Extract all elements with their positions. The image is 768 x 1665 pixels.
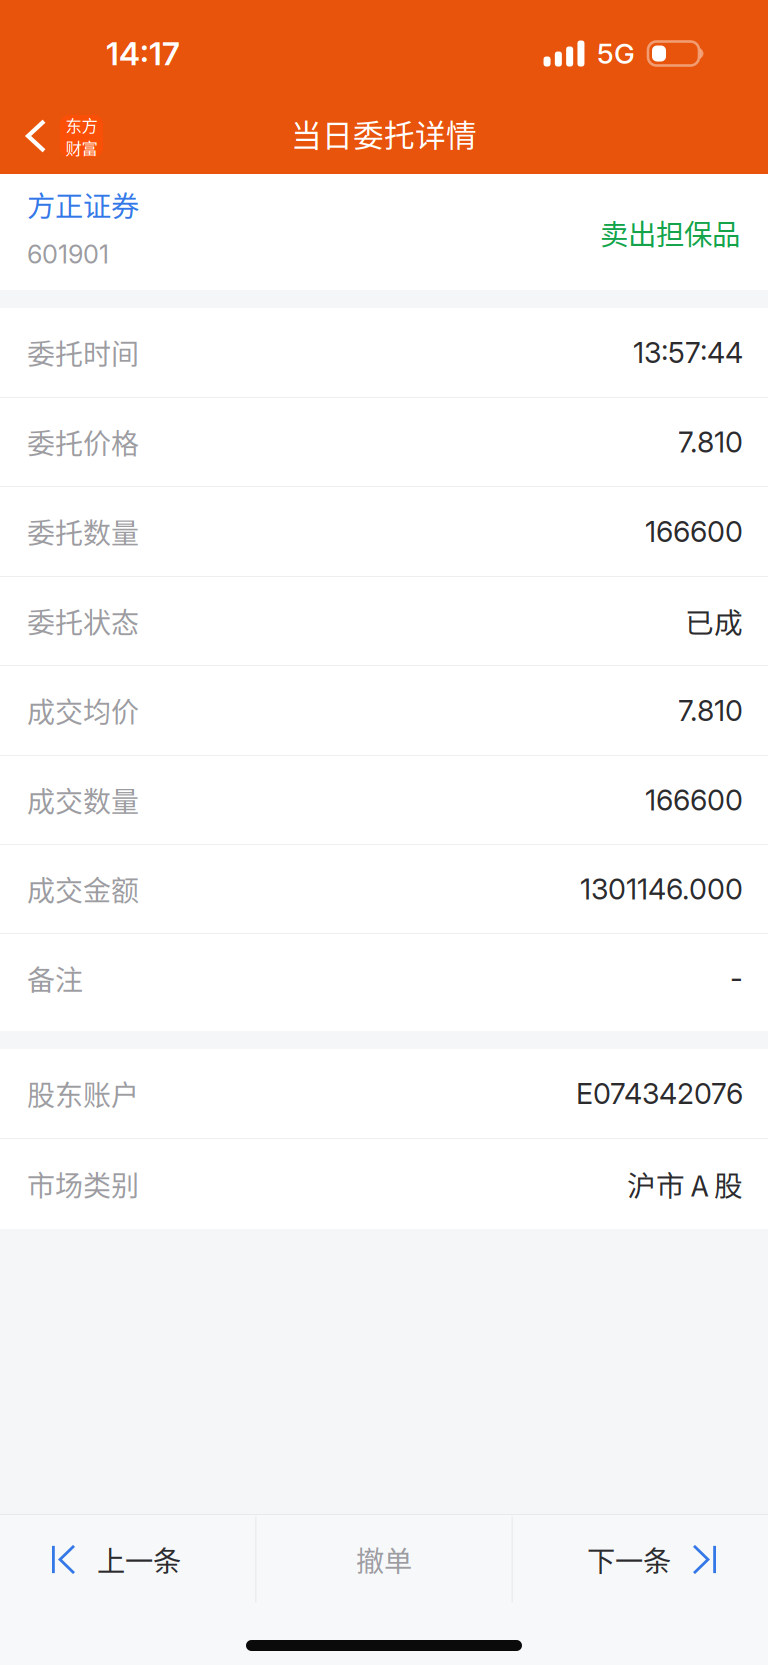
- staticText: 7.810: [678, 693, 743, 728]
- staticText: 成交金额: [27, 869, 139, 909]
- staticText: 委托时间: [27, 332, 139, 373]
- staticText: 下一条: [587, 1539, 671, 1580]
- staticText: 财富: [65, 135, 97, 159]
- staticText: 成交数量: [27, 780, 139, 820]
- button[interactable]: 返回: [0, 106, 117, 166]
- staticText: 市场类别: [27, 1164, 139, 1204]
- staticText: 沪市 A 股: [627, 1163, 743, 1205]
- staticText: 当日委托详情: [291, 111, 477, 156]
- staticText: 股东账户: [27, 1073, 139, 1114]
- staticText: 601901: [27, 239, 109, 270]
- staticText: 方正证券: [27, 184, 139, 225]
- staticText: 已成: [685, 600, 743, 642]
- staticText: 东方: [65, 113, 97, 136]
- button[interactable]: 下一条: [513, 1515, 768, 1604]
- staticText: 13:57:44: [633, 335, 743, 370]
- staticText: 委托数量: [27, 511, 139, 552]
- staticText: 撤单: [356, 1539, 412, 1580]
- staticText: 14:17: [106, 34, 180, 73]
- staticText: E074342076: [576, 1076, 743, 1111]
- staticText: -: [730, 961, 743, 996]
- staticText: 成交均价: [27, 690, 139, 731]
- button[interactable]: 上一条: [0, 1515, 255, 1604]
- staticText: 7.810: [678, 425, 743, 459]
- staticText: 卖出担保品: [600, 212, 740, 253]
- staticText: 委托状态: [27, 601, 139, 641]
- staticText: 1301146.000: [580, 872, 743, 906]
- button[interactable]: 撤单: [256, 1515, 512, 1604]
- staticText: 5G: [597, 37, 635, 70]
- staticText: 166600: [645, 783, 743, 817]
- staticText: 上一条: [97, 1539, 181, 1580]
- staticText: 166600: [645, 514, 743, 549]
- staticText: 备注: [27, 958, 83, 999]
- staticText: 委托价格: [27, 422, 139, 462]
